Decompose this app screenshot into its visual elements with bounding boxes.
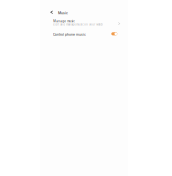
- staticText: Control phone music: [53, 32, 86, 36]
- button[interactable]: Manage music: [0, 15, 172, 26]
- button[interactable]: Back: [0, 0, 58, 15]
- staticText: Manage music: [53, 19, 75, 23]
- staticText: Music: [58, 11, 68, 15]
- staticText: Edit and manage music on your watch: [53, 23, 103, 26]
- button[interactable]: Control phone music: [111, 33, 172, 36]
